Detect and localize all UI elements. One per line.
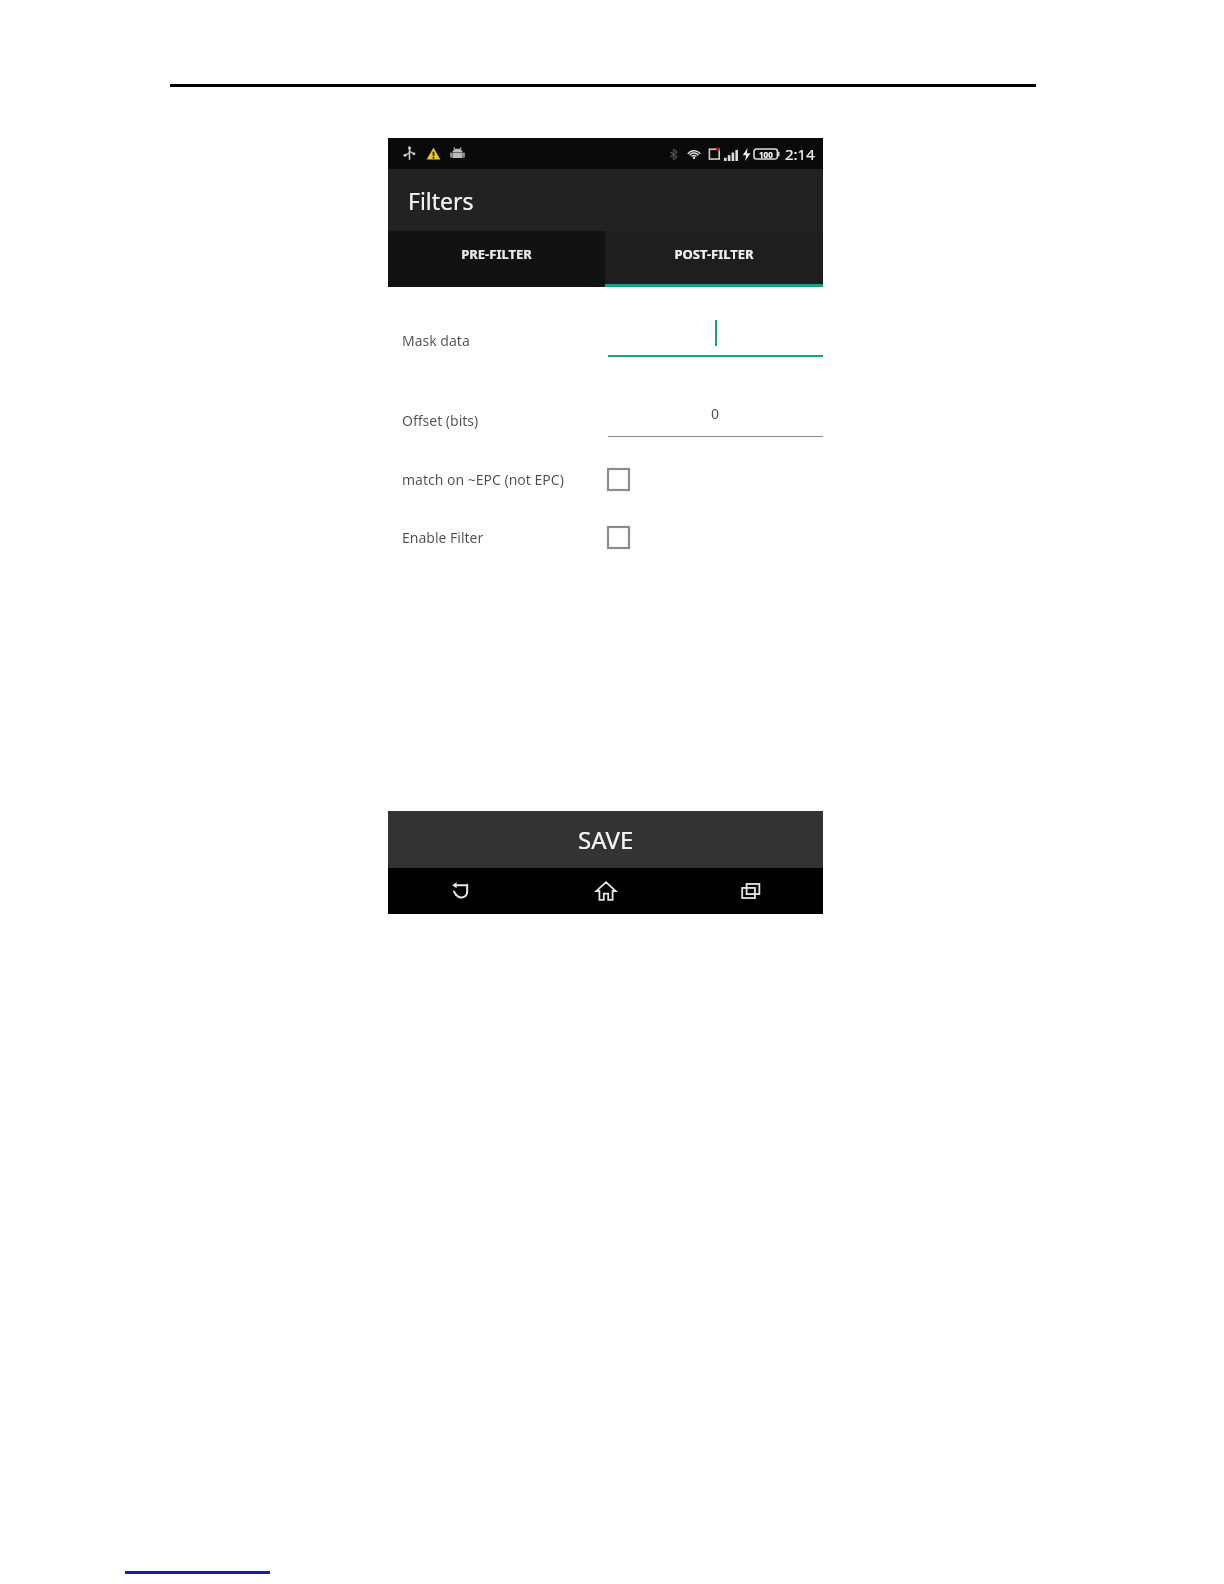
- button[interactable]: match on ~EPC (not EPC): [388, 461, 823, 497]
- button[interactable]: Enable Filter: [388, 519, 823, 555]
- staticText: Enable Filter: [402, 528, 484, 547]
- staticText: 2:14: [785, 144, 815, 164]
- button[interactable]: SAVE: [388, 811, 823, 868]
- staticText: 100: [759, 149, 773, 160]
- staticText: Offset (bits): [402, 411, 479, 430]
- button[interactable]: Recent apps: [678, 868, 823, 914]
- staticText: Filters: [408, 185, 474, 216]
- staticText: POST-FILTER: [674, 245, 754, 263]
- button[interactable]: POST-FILTER: [605, 231, 823, 287]
- other: Enable Filter: [608, 527, 629, 548]
- staticText: PRE-FILTER: [461, 245, 532, 263]
- other: match on ~EPC (not EPC): [608, 469, 629, 490]
- button[interactable]: PRE-FILTER: [388, 231, 605, 287]
- staticText: Mask data: [402, 331, 470, 350]
- staticText: SAVE: [578, 823, 634, 856]
- staticText: match on ~EPC (not EPC): [402, 470, 564, 489]
- staticText: 0: [711, 404, 720, 423]
- button[interactable]: Mask data: [388, 309, 823, 371]
- button[interactable]: Offset (bits): [388, 389, 823, 451]
- button[interactable]: Home: [533, 868, 678, 914]
- button[interactable]: Back: [388, 868, 533, 914]
